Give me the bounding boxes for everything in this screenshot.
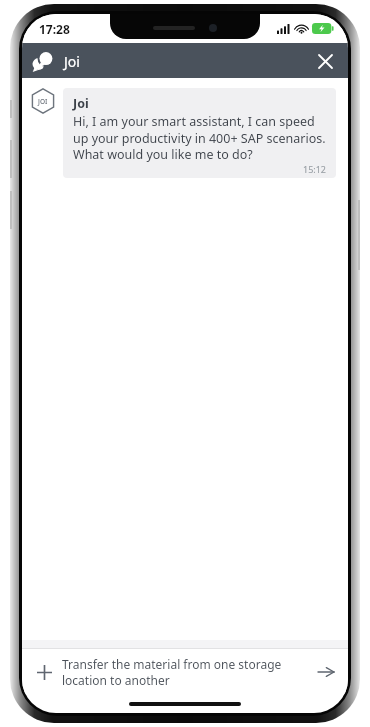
staticText: Hi, I am your smart assistant, I can spe…	[73, 113, 326, 146]
button[interactable]: Joi	[32, 49, 80, 73]
staticText: Joi	[73, 95, 89, 112]
staticText: Joi	[64, 52, 80, 71]
button[interactable]: Close	[308, 44, 342, 78]
staticText: 17:28	[39, 21, 70, 37]
button[interactable]: JOI	[30, 88, 336, 178]
button[interactable]: Send	[312, 658, 340, 686]
button[interactable]: Add attachment	[30, 656, 340, 688]
staticText: What would you like me to do?	[73, 146, 253, 163]
staticText: 15:12	[73, 163, 326, 175]
staticText: JOI	[38, 97, 48, 106]
staticText: Transfer the material from one storage l…	[62, 656, 306, 688]
button[interactable]: Add attachment	[30, 658, 58, 686]
